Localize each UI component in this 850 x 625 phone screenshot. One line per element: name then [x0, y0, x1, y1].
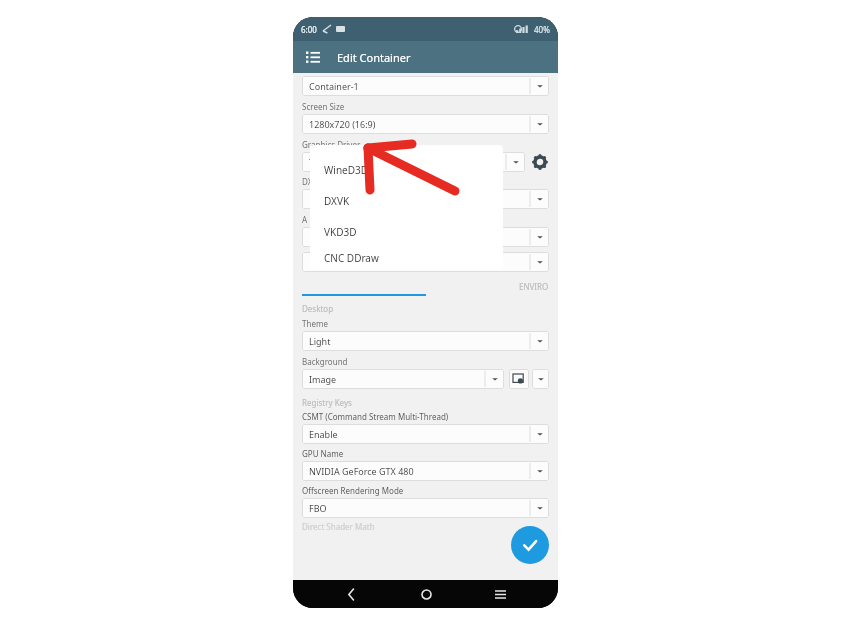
button[interactable]: NVIDIA GeForce GTX 480	[302, 461, 549, 481]
button[interactable]: Image	[302, 369, 504, 389]
staticText: 6:00	[301, 24, 317, 35]
button[interactable]: Open navigation menu	[303, 47, 323, 67]
button[interactable]	[302, 189, 549, 209]
button[interactable]: FBO	[302, 498, 549, 518]
staticText: Screen Size	[302, 101, 345, 112]
staticText: WineD3D	[324, 163, 369, 177]
button[interactable]: Turnip (Adreno)	[302, 152, 525, 172]
staticText: CSMT (Command Stream Multi-Thread)	[302, 411, 449, 422]
staticText: ENVIRO	[519, 281, 549, 292]
staticText: Theme	[302, 318, 328, 329]
staticText: 1280x720 (16:9)	[309, 118, 376, 130]
staticText: CNC DDraw	[324, 251, 379, 265]
staticText: Offscreen Rendering Mode	[302, 485, 404, 496]
staticText: VKD3D	[324, 225, 357, 239]
staticText: Turnip (Adreno)	[309, 156, 375, 168]
button[interactable]: DXVK	[324, 185, 503, 216]
button[interactable]: Back	[334, 580, 368, 608]
staticText: Direct Shader Math	[302, 521, 375, 532]
staticText: DX Wrapper	[302, 176, 348, 187]
staticText: Enable	[309, 428, 338, 440]
button[interactable]: VKD3D	[324, 216, 503, 247]
staticText: A	[302, 214, 308, 225]
staticText: Registry Keys	[302, 397, 352, 408]
staticText: Image	[309, 373, 337, 385]
button[interactable]: Pick background image	[509, 369, 529, 389]
button[interactable]	[302, 252, 549, 272]
staticText: Light	[309, 335, 331, 347]
staticText: Background	[302, 356, 348, 367]
button[interactable]: Save container	[511, 526, 549, 564]
button[interactable]: Recent apps	[483, 580, 517, 608]
staticText: Edit Container	[337, 50, 411, 65]
button[interactable]: Driver settings	[531, 153, 549, 171]
staticText: Graphics Driver	[302, 139, 361, 150]
staticText: Container-1	[309, 80, 359, 92]
button[interactable]: CNC DDraw	[324, 247, 503, 269]
staticText: FBO	[309, 502, 327, 514]
button[interactable]	[302, 227, 549, 247]
button[interactable]: Background options	[532, 369, 549, 389]
button[interactable]: Container-1	[302, 76, 549, 96]
button[interactable]: Light	[302, 331, 549, 351]
staticText: 40%	[534, 24, 550, 35]
button[interactable]: Enable	[302, 424, 549, 444]
button[interactable]: 1280x720 (16:9)	[302, 114, 549, 134]
staticText: DXVK	[324, 194, 350, 208]
staticText: NVIDIA GeForce GTX 480	[309, 465, 414, 477]
button[interactable]: Home	[409, 580, 443, 608]
button[interactable]: WineD3D	[324, 154, 503, 185]
staticText: GPU Name	[302, 448, 344, 459]
staticText: Desktop	[302, 303, 334, 314]
